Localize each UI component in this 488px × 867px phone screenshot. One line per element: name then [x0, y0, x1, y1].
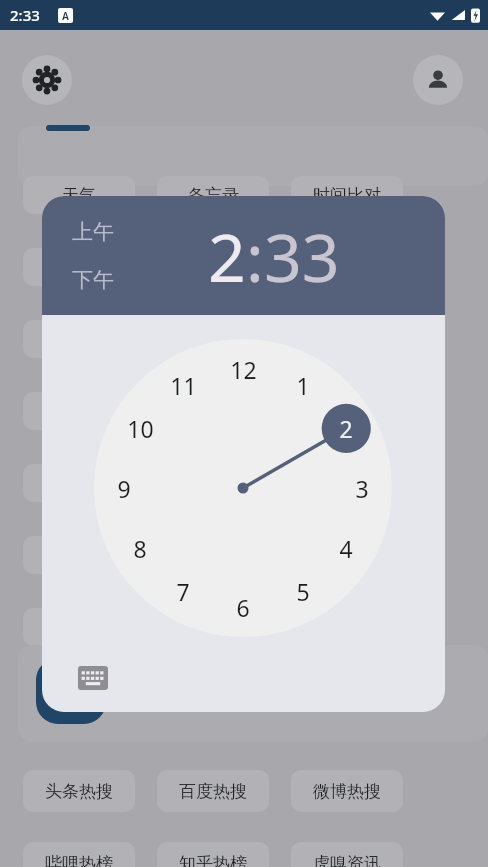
staticText: 2 [339, 413, 353, 444]
staticText: 头条热搜 [45, 781, 113, 802]
staticText: 9 [117, 473, 131, 504]
button[interactable]: 上午 [72, 219, 114, 245]
button[interactable]: Profile [413, 55, 463, 105]
button[interactable] [23, 536, 135, 574]
button[interactable] [23, 392, 135, 430]
button[interactable]: 1 [283, 365, 323, 405]
staticText: 11 [170, 370, 197, 401]
button[interactable]: 虎嗅资讯 [291, 842, 403, 867]
button[interactable]: 12 [223, 349, 263, 389]
staticText: 2:33 [10, 5, 40, 25]
button[interactable]: 11 [163, 365, 203, 405]
button[interactable]: 百度热搜 [157, 770, 269, 812]
button[interactable] [157, 392, 269, 430]
staticText: 上午 [72, 219, 114, 245]
button[interactable] [157, 464, 269, 502]
button[interactable]: 下午 [72, 267, 114, 293]
button[interactable]: 时间比对 [291, 176, 403, 214]
staticText: 天气 [62, 185, 96, 206]
button[interactable] [291, 464, 403, 502]
button[interactable] [291, 248, 403, 286]
staticText: 时间比对 [313, 185, 381, 206]
staticText: 8 [133, 533, 147, 564]
staticText: 10 [127, 413, 154, 444]
staticText: A [62, 9, 69, 23]
button[interactable] [23, 464, 135, 502]
button[interactable]: 2 [326, 408, 366, 448]
button[interactable]: 微博热搜 [291, 770, 403, 812]
button[interactable] [23, 248, 135, 286]
button[interactable]: 10 [120, 408, 160, 448]
button[interactable]: 3 [342, 468, 382, 508]
button[interactable]: 天气 [23, 176, 135, 214]
button[interactable]: Settings [22, 55, 72, 105]
staticText: 1 [296, 370, 310, 401]
button[interactable]: 9 [104, 468, 144, 508]
button[interactable]: 6 [223, 587, 263, 627]
staticText: 下午 [72, 267, 114, 293]
button[interactable] [291, 608, 403, 646]
staticText: : [246, 211, 264, 301]
button[interactable]: 头条热搜 [23, 770, 135, 812]
staticText: 微博热搜 [313, 781, 381, 802]
staticText: 2 [208, 211, 246, 301]
staticText: 3 [355, 473, 369, 504]
button[interactable] [23, 608, 135, 646]
staticText: 6 [236, 592, 250, 623]
button[interactable]: 哔哩热榜 [23, 842, 135, 867]
staticText: 虎嗅资讯 [313, 853, 381, 867]
button[interactable] [157, 320, 269, 358]
button[interactable]: 知乎热榜 [157, 842, 269, 867]
button[interactable] [157, 248, 269, 286]
staticText: 4 [339, 533, 353, 564]
button[interactable] [291, 536, 403, 574]
button[interactable]: 5 [283, 571, 323, 611]
button[interactable]: 4 [326, 528, 366, 568]
staticText: 33 [264, 211, 340, 301]
staticText: 5 [296, 576, 310, 607]
staticText: 百度热搜 [179, 781, 247, 802]
button[interactable] [157, 608, 269, 646]
button[interactable]: Switch to text input [78, 666, 108, 690]
button[interactable]: 2 [208, 211, 246, 301]
staticText: 7 [176, 576, 190, 607]
staticText: 知乎热榜 [179, 853, 247, 867]
button[interactable]: 33 [264, 211, 340, 301]
staticText: 哔哩热榜 [45, 853, 113, 867]
button[interactable]: 备忘录 [157, 176, 269, 214]
button[interactable] [23, 320, 135, 358]
staticText: 12 [230, 354, 257, 385]
button[interactable] [291, 392, 403, 430]
button[interactable]: 7 [163, 571, 203, 611]
staticText: 备忘录 [188, 185, 239, 206]
button[interactable]: 8 [120, 528, 160, 568]
